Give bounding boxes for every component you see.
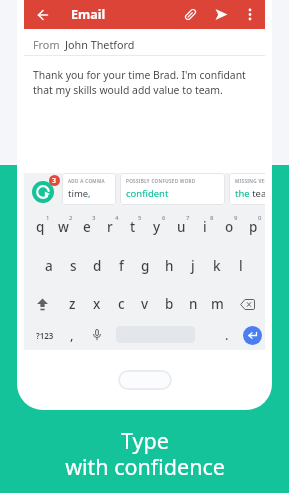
staticText: t (130, 218, 136, 236)
button[interactable]: d (85, 251, 109, 281)
staticText: Email (71, 6, 106, 23)
button[interactable]: v (133, 289, 157, 319)
staticText: y (153, 218, 161, 236)
button[interactable] (243, 326, 262, 345)
button[interactable]: u (169, 212, 193, 242)
staticText: 0 (258, 214, 262, 222)
staticText: i (203, 218, 207, 236)
button[interactable]: g (133, 251, 157, 281)
staticText: n (189, 295, 198, 313)
staticText: m (211, 295, 224, 313)
staticText: confident (126, 187, 169, 200)
staticText: ADD A COMMA (68, 178, 105, 184)
button[interactable]: l (229, 251, 253, 281)
staticText: time, (68, 187, 91, 200)
staticText: Thank you for your time Brad. I'm confid… (33, 68, 246, 97)
button[interactable]: y (145, 212, 169, 242)
button[interactable]: h (157, 251, 181, 281)
button[interactable]: i (193, 212, 217, 242)
button[interactable]: m (205, 289, 229, 319)
staticText: ?123 (36, 330, 54, 341)
button[interactable]: k (205, 251, 229, 281)
staticText: w (58, 218, 69, 236)
staticText: x (93, 295, 101, 313)
staticText: 2 (69, 214, 73, 222)
staticText: v (141, 295, 149, 313)
button[interactable]: a (36, 251, 61, 281)
button[interactable]: Email (24, 0, 265, 29)
button[interactable]: w (52, 212, 75, 242)
button[interactable]: b (157, 289, 181, 319)
button[interactable]: . (220, 322, 234, 348)
staticText: MISSING VERB (235, 178, 265, 184)
staticText: f (119, 257, 124, 275)
staticText: p (249, 218, 258, 236)
staticText: q (36, 218, 45, 236)
staticText: From (33, 37, 60, 52)
staticText: g (141, 257, 150, 275)
button[interactable]: t (121, 212, 145, 242)
staticText: c (118, 295, 125, 313)
staticText: a (45, 257, 53, 275)
staticText: John Thetford (65, 37, 135, 52)
button[interactable]: r (98, 212, 121, 242)
staticText: 9 (234, 214, 238, 222)
staticText: 7 (186, 214, 190, 222)
button[interactable]: n (181, 289, 205, 319)
staticText: 8 (210, 214, 214, 222)
staticText: e (83, 218, 91, 236)
button[interactable] (24, 289, 60, 319)
staticText: b (165, 295, 174, 313)
staticText: POSSIBLY CONFUSED WORD (126, 178, 196, 184)
button[interactable]: ADD A COMMA (68, 178, 116, 205)
staticText: z (69, 295, 76, 313)
staticText: o (225, 218, 234, 236)
button[interactable]: e (75, 212, 98, 242)
staticText: s (70, 257, 77, 275)
button[interactable]: q (29, 212, 52, 242)
staticText: 6 (162, 214, 166, 222)
staticText: j (191, 257, 195, 275)
staticText: h (165, 257, 174, 275)
staticText: r (107, 218, 113, 236)
staticText: , (70, 326, 74, 344)
button[interactable]: f (109, 251, 133, 281)
button[interactable] (118, 370, 172, 390)
button[interactable]: j (181, 251, 205, 281)
staticText: 3 (52, 176, 57, 186)
button[interactable]: , (65, 322, 79, 348)
staticText: 3 (92, 214, 96, 222)
button[interactable]: x (85, 289, 109, 319)
staticText: u (177, 218, 186, 236)
button[interactable]: s (61, 251, 85, 281)
button[interactable]: p (241, 212, 265, 242)
button[interactable]: ?123 (32, 322, 57, 348)
staticText: 1 (46, 214, 50, 222)
button[interactable]: MISSING VERB (235, 178, 265, 205)
button[interactable]: POSSIBLY CONFUSED WORD (126, 178, 225, 205)
staticText: . (225, 326, 229, 344)
button[interactable]: From (24, 29, 265, 56)
staticText: d (93, 257, 102, 275)
staticText: the team (235, 187, 265, 200)
staticText: k (213, 257, 221, 275)
staticText: Type with confidence (65, 426, 225, 482)
staticText: l (239, 257, 243, 275)
staticText: 5 (138, 214, 142, 222)
button[interactable] (90, 322, 104, 348)
button[interactable] (32, 181, 54, 203)
staticText: 4 (115, 214, 119, 222)
button[interactable]: c (109, 289, 133, 319)
button[interactable] (229, 289, 265, 319)
button[interactable]: o (217, 212, 241, 242)
button[interactable]: z (60, 289, 85, 319)
